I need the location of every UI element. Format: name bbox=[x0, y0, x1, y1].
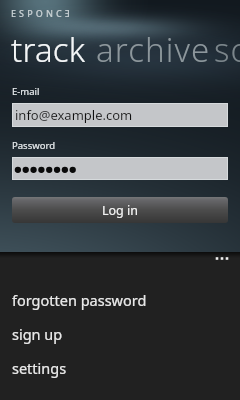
staticText: Password bbox=[12, 139, 55, 152]
button[interactable]: info@example.com bbox=[13, 104, 227, 126]
staticText: info@example.com bbox=[15, 106, 133, 124]
staticText: track bbox=[11, 27, 86, 72]
button[interactable]: sign up bbox=[0, 317, 240, 351]
staticText: sign up bbox=[12, 324, 63, 344]
button[interactable]: settings bbox=[0, 351, 240, 385]
staticText: E-mail bbox=[12, 85, 40, 98]
button[interactable]: More options bbox=[206, 252, 240, 270]
staticText: so bbox=[214, 27, 240, 72]
staticText: settings bbox=[12, 358, 67, 378]
button[interactable] bbox=[13, 158, 227, 179]
staticText: forgotten password bbox=[12, 290, 147, 310]
staticText: ESPONCƎ bbox=[11, 7, 73, 19]
button[interactable]: forgotten password bbox=[0, 283, 240, 317]
staticText: archive bbox=[96, 27, 211, 72]
button[interactable]: Log in bbox=[12, 197, 228, 223]
staticText: Log in bbox=[102, 202, 139, 219]
